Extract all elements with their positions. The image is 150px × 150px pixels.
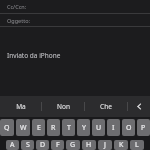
staticText: R <box>51 123 56 133</box>
button[interactable]: L <box>130 140 144 150</box>
button[interactable]: Oggetto: <box>0 14 150 26</box>
button[interactable]: G <box>66 140 80 150</box>
staticText: W <box>20 123 27 133</box>
staticText: P <box>141 123 146 133</box>
staticText: Y <box>82 123 86 133</box>
staticText: S <box>26 140 30 150</box>
staticText: H <box>86 140 92 150</box>
button[interactable]: Che <box>85 96 127 117</box>
button[interactable]: R <box>47 119 60 136</box>
button[interactable]: U <box>92 119 105 136</box>
button[interactable]: J <box>98 140 112 150</box>
staticText: K <box>119 140 124 150</box>
staticText: F <box>56 140 60 150</box>
button[interactable]: K <box>114 140 128 150</box>
button[interactable]: P <box>137 119 150 136</box>
staticText: D <box>40 140 46 150</box>
button[interactable]: Q <box>0 119 14 136</box>
button[interactable]: F <box>51 140 64 150</box>
staticText: O <box>126 123 132 133</box>
button[interactable]: H <box>82 140 96 150</box>
button[interactable]: Inviato da iPhone <box>0 27 150 96</box>
staticText: Q <box>4 123 10 133</box>
button[interactable]: T <box>62 119 75 136</box>
button[interactable]: S <box>21 140 34 150</box>
button[interactable]: W <box>16 119 30 136</box>
button[interactable]: Hide predictions <box>128 96 150 117</box>
button[interactable]: I <box>107 119 120 136</box>
button[interactable]: D <box>36 140 49 150</box>
staticText: G <box>70 140 76 150</box>
button[interactable]: Ma <box>0 96 41 117</box>
staticText: Inviato da iPhone <box>7 51 61 60</box>
button[interactable]: E <box>32 119 45 136</box>
staticText: Cc/Ccn: <box>7 3 27 10</box>
staticText: U <box>96 123 102 133</box>
staticText: E <box>37 123 41 133</box>
button[interactable]: Y <box>77 119 90 136</box>
staticText: Non <box>57 102 70 111</box>
staticText: L <box>135 140 139 150</box>
button[interactable]: A <box>6 140 19 150</box>
staticText: Che <box>100 102 112 111</box>
staticText: I <box>112 123 115 133</box>
staticText: J <box>104 140 106 150</box>
staticText: Ma <box>16 102 26 111</box>
button[interactable]: Non <box>42 96 84 117</box>
button[interactable]: O <box>122 119 135 136</box>
button[interactable]: Cc/Ccn: <box>0 0 150 13</box>
staticText: A <box>10 140 15 150</box>
staticText: T <box>67 123 71 133</box>
staticText: Oggetto: <box>7 17 30 24</box>
